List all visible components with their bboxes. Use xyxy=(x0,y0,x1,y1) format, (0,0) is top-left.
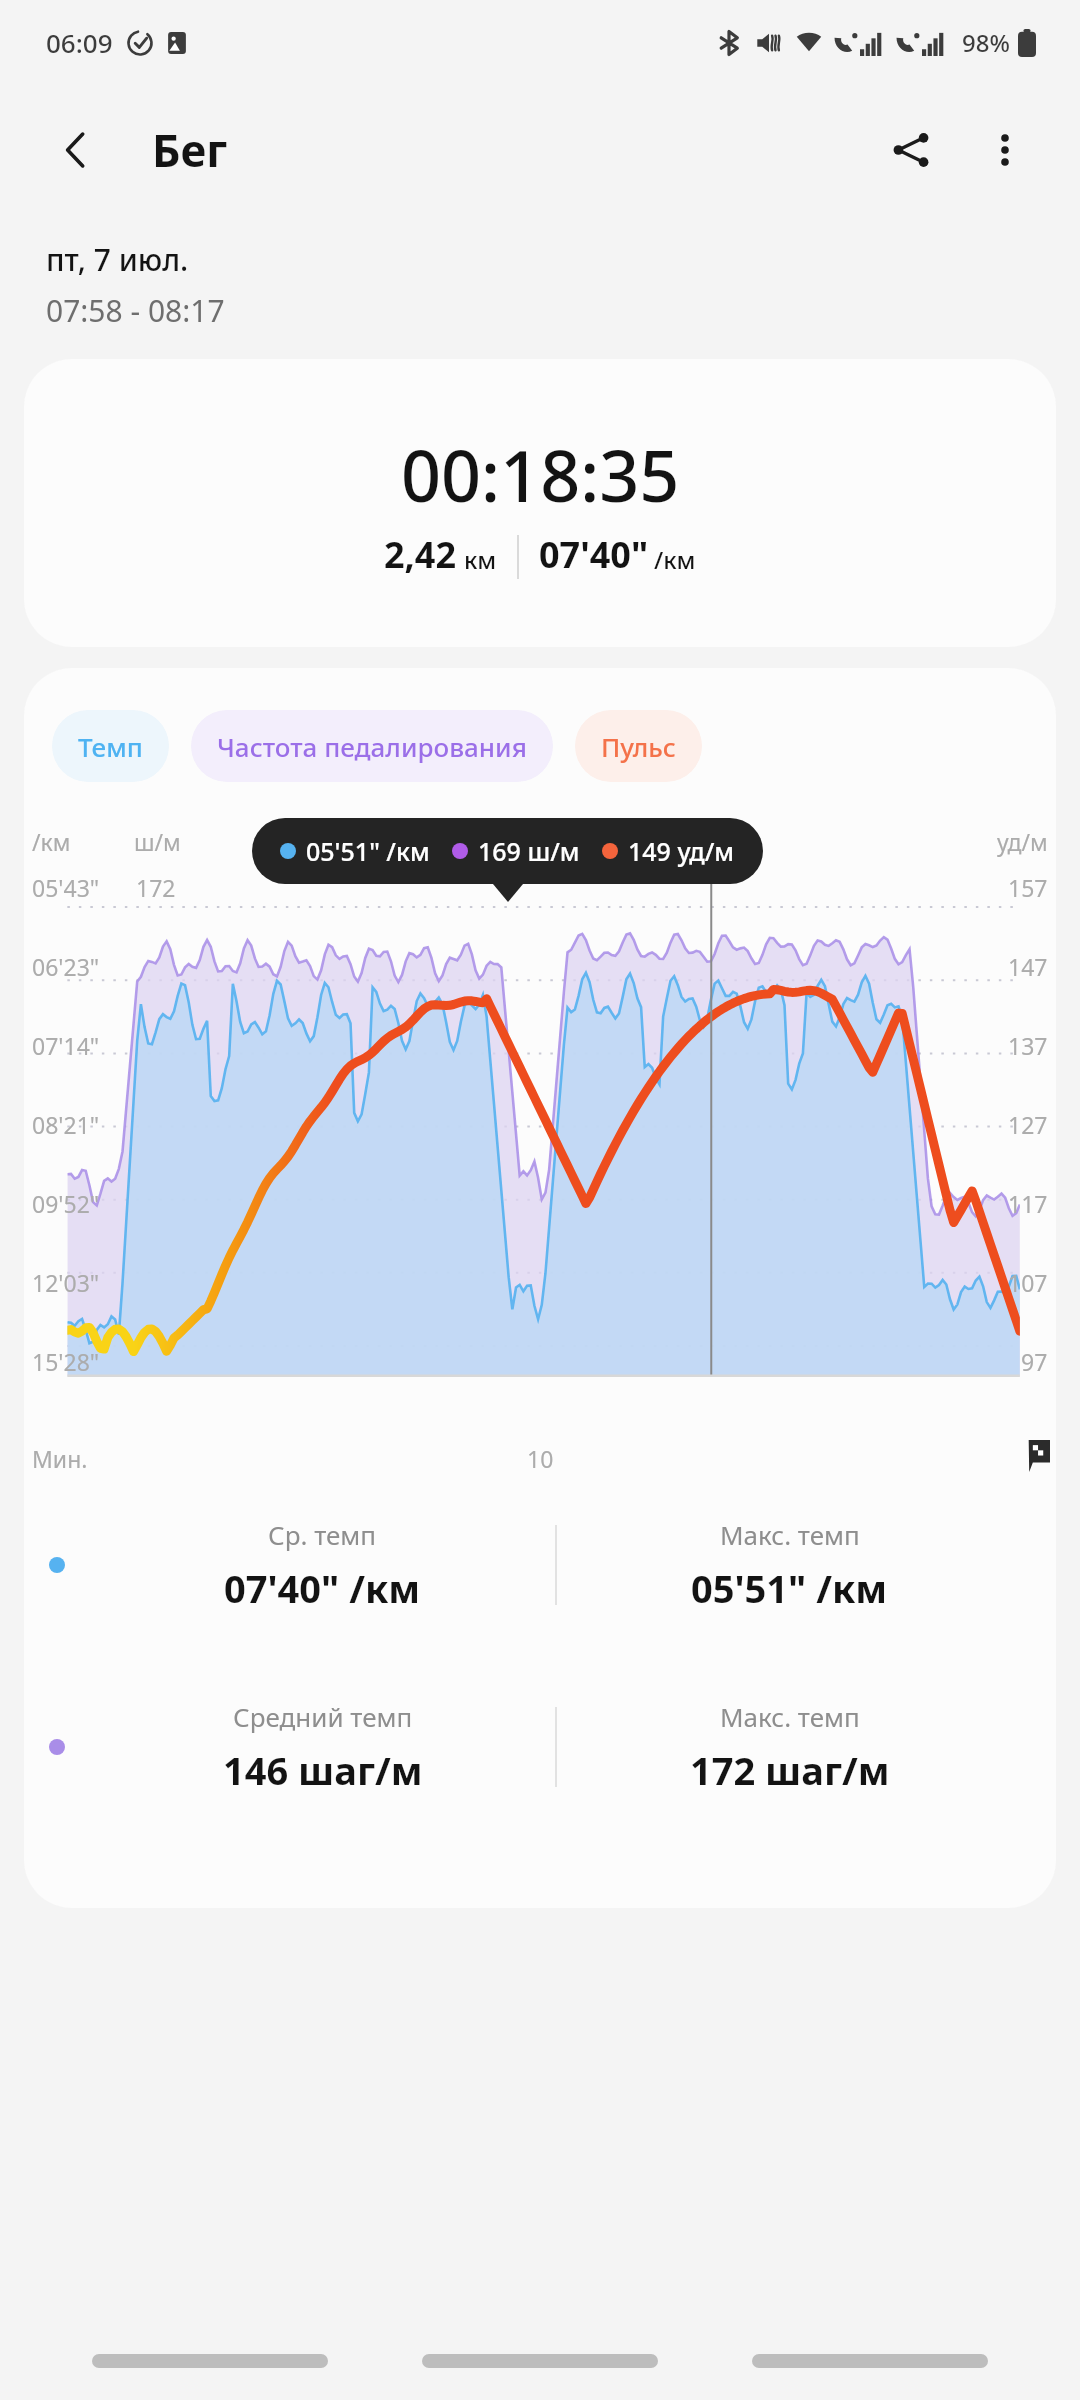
staticText: 97 xyxy=(1021,1346,1048,1377)
button[interactable]: Темп xyxy=(52,710,169,782)
staticText: 07'40" /км xyxy=(224,1562,421,1614)
button[interactable]: Средний темп xyxy=(90,1699,555,1796)
staticText: Средний темп xyxy=(233,1699,413,1734)
staticText: 98% xyxy=(962,26,1010,59)
staticText: 2,42 xyxy=(384,530,457,579)
staticText: 05'51" /км xyxy=(691,1562,888,1614)
staticText: 06'23" xyxy=(32,951,100,982)
staticText: 147 xyxy=(1008,951,1048,982)
button[interactable]: Макс. темп xyxy=(557,1699,1022,1796)
staticText: Пульс xyxy=(601,729,676,764)
button[interactable]: Ср. темп xyxy=(90,1517,555,1614)
button[interactable]: Back xyxy=(750,2338,990,2384)
staticText: 00:18:35 xyxy=(401,427,680,522)
staticText: Темп xyxy=(78,729,143,764)
staticText: 137 xyxy=(1008,1030,1048,1061)
staticText: 149 уд/м xyxy=(628,834,735,868)
staticText: 07'40" xyxy=(539,530,649,579)
staticText: 08'21" xyxy=(32,1109,100,1140)
staticText: Макс. темп xyxy=(720,1517,860,1552)
button[interactable]: 00:18:35 xyxy=(24,359,1056,647)
staticText: 12'03" xyxy=(32,1267,100,1298)
staticText: 06:09 xyxy=(46,25,113,60)
staticText: ш/м xyxy=(134,826,181,857)
staticText: пт, 7 июл. xyxy=(46,239,189,280)
staticText: 15'28" xyxy=(32,1346,100,1377)
staticText: 07'14" xyxy=(32,1030,100,1061)
staticText: уд/м xyxy=(997,826,1048,857)
button[interactable]: Частота педалирования xyxy=(191,710,553,782)
staticText: 05'43" xyxy=(32,872,100,903)
staticText: 107 xyxy=(1008,1267,1048,1298)
button[interactable]: Макс. темп xyxy=(557,1517,1022,1614)
staticText: 127 xyxy=(1008,1109,1048,1140)
staticText: 10 xyxy=(527,1443,554,1474)
button[interactable]: Home xyxy=(420,2338,660,2384)
staticText: 169 ш/м xyxy=(478,834,580,868)
button[interactable]: Пульс xyxy=(575,710,702,782)
staticText: /км xyxy=(32,826,71,857)
staticText: 117 xyxy=(1008,1188,1048,1219)
staticText: Частота педалирования xyxy=(217,729,527,764)
staticText: 172 xyxy=(136,872,176,903)
staticText: км xyxy=(464,543,497,576)
button[interactable]: Back xyxy=(40,114,112,186)
staticText: 07:58 - 08:17 xyxy=(46,290,225,331)
staticText: Бег xyxy=(152,120,228,180)
staticText: Макс. темп xyxy=(720,1699,860,1734)
staticText: /км xyxy=(654,543,696,576)
staticText: Ср. темп xyxy=(268,1517,377,1552)
staticText: 09'52" xyxy=(32,1188,100,1219)
staticText: 157 xyxy=(1008,872,1048,903)
staticText: 146 шаг/м xyxy=(223,1744,423,1796)
button[interactable]: More options xyxy=(966,111,1044,189)
button[interactable]: Recents xyxy=(90,2338,330,2384)
staticText: 172 шаг/м xyxy=(690,1744,890,1796)
staticText: 05'51" /км xyxy=(306,834,430,868)
button[interactable]: Share xyxy=(872,111,950,189)
staticText: Мин. xyxy=(32,1443,88,1474)
